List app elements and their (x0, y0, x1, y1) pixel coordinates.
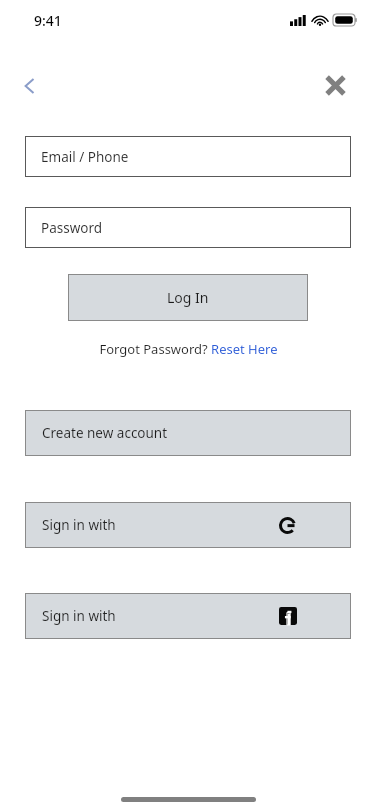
button[interactable]: Email / Phone (25, 136, 351, 177)
staticText: Create new account (42, 424, 168, 442)
button[interactable]: Back (12, 68, 48, 104)
button[interactable]: Forgot Password? Reset Here (99, 340, 278, 358)
staticText: Log In (167, 288, 209, 307)
staticText: Password (41, 219, 103, 237)
staticText: Forgot Password? Reset Here (99, 340, 278, 358)
staticText: 9:41 (34, 11, 62, 30)
staticText: Sign in with (42, 607, 116, 625)
button[interactable]: Log In (68, 274, 308, 321)
button[interactable]: Create new account (25, 410, 351, 456)
button[interactable]: Sign in with (25, 502, 351, 548)
staticText: Email / Phone (41, 148, 129, 166)
button[interactable]: Sign in with (25, 593, 351, 639)
button[interactable]: Password (25, 207, 351, 248)
button[interactable]: Close (317, 67, 353, 103)
staticText: Sign in with (42, 516, 116, 534)
